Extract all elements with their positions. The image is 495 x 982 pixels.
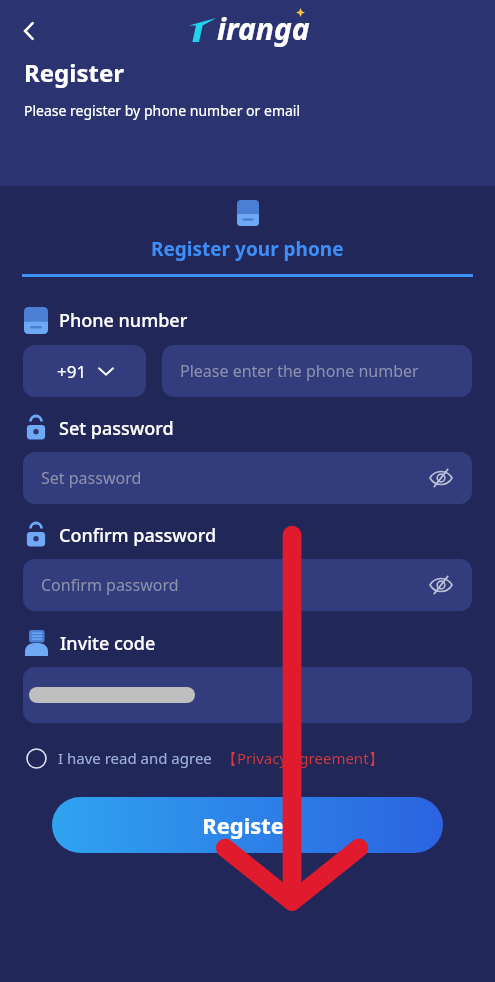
button[interactable]: Register your phone (0, 200, 495, 277)
button[interactable]: Back (6, 8, 52, 54)
staticText: +91 (57, 360, 87, 383)
staticText: Confirm password (41, 574, 179, 596)
button[interactable]: 【Privacy agreement】 (222, 748, 384, 768)
staticText: Phone number (59, 308, 188, 333)
staticText: I have read and agree (58, 748, 212, 768)
button[interactable]: Register (52, 797, 443, 853)
button[interactable]: Confirm password (23, 559, 472, 611)
button[interactable]: Agree checkbox (20, 742, 52, 774)
staticText: Invite code (60, 631, 156, 656)
staticText: Register (202, 810, 294, 840)
staticText: iranga (217, 8, 310, 49)
button[interactable] (23, 667, 472, 723)
staticText: Register your phone (151, 236, 344, 262)
button[interactable]: Show password (424, 568, 458, 602)
staticText: 【Privacy agreement】 (222, 748, 384, 768)
staticText: Set password (41, 467, 142, 489)
button[interactable]: +91 (23, 345, 146, 397)
button[interactable]: Please enter the phone number (162, 345, 472, 397)
staticText: Register (24, 56, 124, 89)
staticText: Please enter the phone number (180, 360, 419, 382)
button[interactable]: Show password (424, 461, 458, 495)
button[interactable]: Set password (23, 452, 472, 504)
staticText: Confirm password (59, 523, 217, 548)
staticText: Please register by phone number or email (24, 101, 301, 120)
staticText: Set password (59, 416, 174, 441)
